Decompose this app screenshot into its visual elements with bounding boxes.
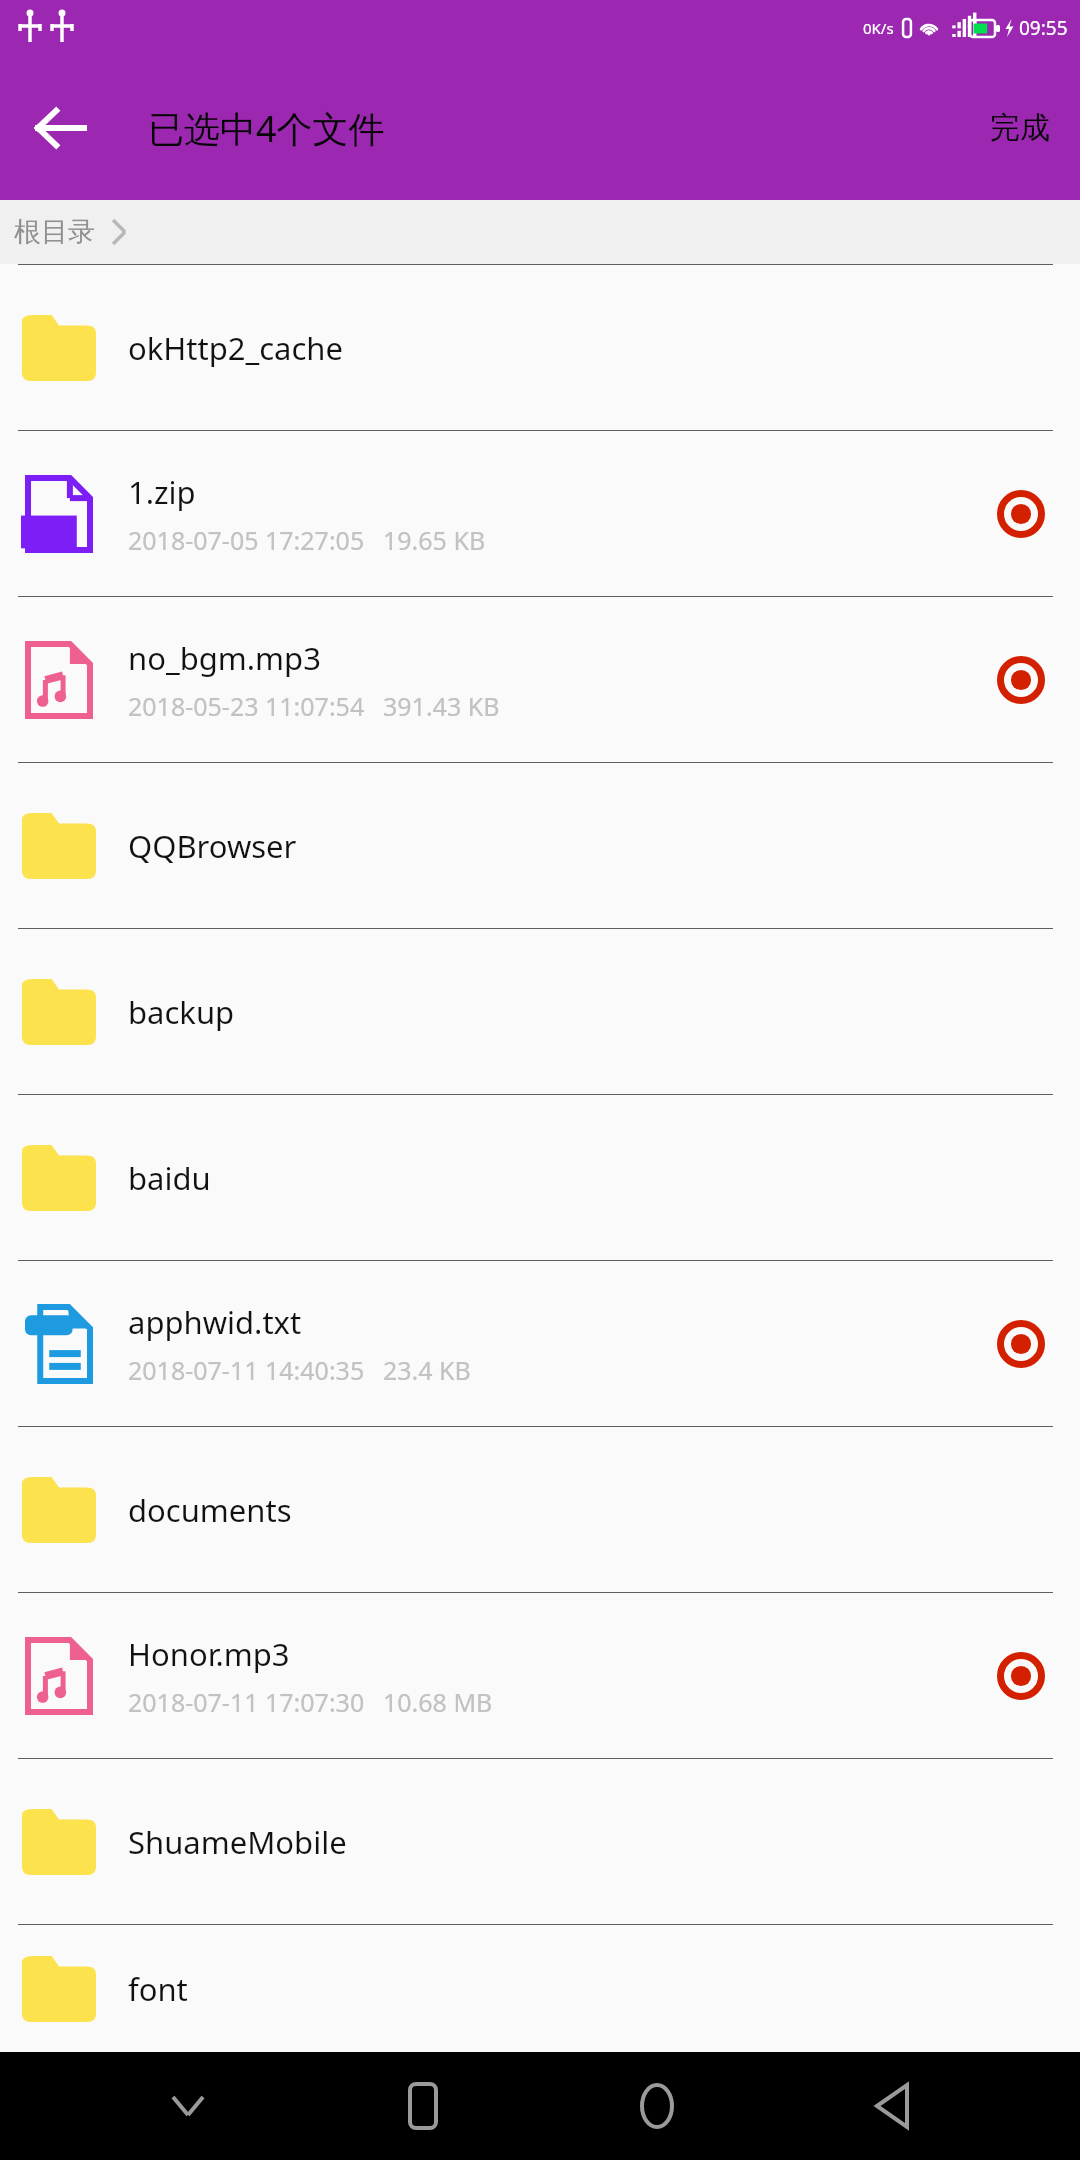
- staticText: documents: [128, 1489, 292, 1531]
- staticText: ShuameMobile: [128, 1821, 347, 1863]
- staticText: 2018-07-11 14:40:35: [128, 1353, 365, 1387]
- button[interactable]: 根目录: [0, 209, 135, 255]
- button[interactable]: Selected: [989, 1312, 1053, 1376]
- staticText: 391.43 KB: [383, 689, 500, 723]
- staticText: 完成: [990, 109, 1050, 147]
- button[interactable]: apphwid.txt: [0, 1261, 1080, 1427]
- button[interactable]: Hide: [142, 2060, 234, 2152]
- button[interactable]: 完成: [960, 87, 1080, 169]
- staticText: 23.4 KB: [383, 1353, 471, 1387]
- button[interactable]: documents: [0, 1427, 1080, 1593]
- button[interactable]: Back: [846, 2060, 938, 2152]
- button[interactable]: backup: [0, 929, 1080, 1095]
- staticText: 0K/s: [863, 18, 894, 38]
- staticText: 根目录: [14, 215, 95, 249]
- staticText: 10.68 MB: [383, 1685, 493, 1719]
- staticText: 19.65 KB: [383, 523, 486, 557]
- button[interactable]: 1.zip: [0, 431, 1080, 597]
- staticText: backup: [128, 991, 235, 1033]
- button[interactable]: Honor.mp3: [0, 1593, 1080, 1759]
- button[interactable]: okHttp2_cache: [0, 265, 1080, 431]
- staticText: 09:55: [1019, 15, 1068, 41]
- button[interactable]: QQBrowser: [0, 763, 1080, 929]
- button[interactable]: Home: [611, 2060, 703, 2152]
- button[interactable]: Selected: [989, 648, 1053, 712]
- button[interactable]: no_bgm.mp3: [0, 597, 1080, 763]
- button[interactable]: font: [0, 1925, 1080, 2052]
- staticText: apphwid.txt: [128, 1301, 302, 1343]
- button[interactable]: Selected: [989, 482, 1053, 546]
- button[interactable]: baidu: [0, 1095, 1080, 1261]
- staticText: okHttp2_cache: [128, 327, 344, 369]
- button[interactable]: ShuameMobile: [0, 1759, 1080, 1925]
- staticText: baidu: [128, 1157, 211, 1199]
- staticText: font: [128, 1968, 188, 2010]
- staticText: Honor.mp3: [128, 1633, 290, 1675]
- staticText: no_bgm.mp3: [128, 637, 321, 679]
- staticText: 已选中4个文件: [148, 104, 385, 153]
- staticText: 1.zip: [128, 471, 196, 513]
- staticText: 2018-07-05 17:27:05: [128, 523, 365, 557]
- button[interactable]: Back: [18, 86, 102, 170]
- button[interactable]: Recents: [377, 2060, 469, 2152]
- staticText: 2018-05-23 11:07:54: [128, 689, 365, 723]
- staticText: 2018-07-11 17:07:30: [128, 1685, 365, 1719]
- button[interactable]: Selected: [989, 1644, 1053, 1708]
- staticText: QQBrowser: [128, 825, 297, 867]
